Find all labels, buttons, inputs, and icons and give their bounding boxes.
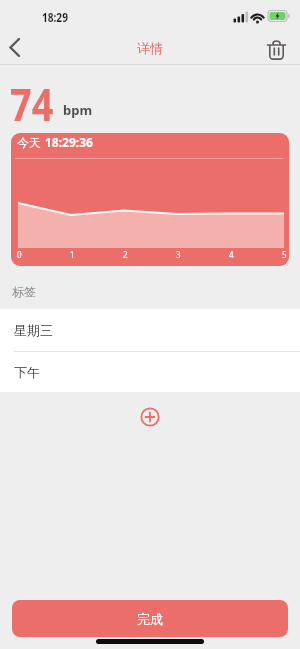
staticText: 完成: [137, 611, 163, 627]
button[interactable]: 完成: [12, 600, 288, 637]
button[interactable]: 下午: [0, 352, 300, 392]
staticText: 4: [229, 249, 234, 260]
button[interactable]: [0, 34, 40, 64]
staticText: 今天: [17, 134, 45, 150]
staticText: 18:29:36: [45, 134, 93, 150]
button[interactable]: [136, 403, 164, 431]
staticText: 74: [10, 74, 54, 134]
staticText: 1: [70, 249, 75, 260]
button[interactable]: [260, 34, 296, 66]
button[interactable]: 星期三: [0, 309, 300, 351]
staticText: 2: [123, 249, 128, 260]
staticText: 下午: [14, 364, 40, 380]
staticText: 星期三: [14, 322, 53, 338]
staticText: 0: [17, 249, 22, 260]
staticText: 3: [176, 249, 181, 260]
staticText: bpm: [63, 101, 93, 119]
staticText: 详情: [137, 40, 163, 56]
staticText: 18:29: [42, 9, 68, 25]
staticText: 标签: [12, 284, 36, 299]
staticText: 5: [282, 249, 287, 260]
